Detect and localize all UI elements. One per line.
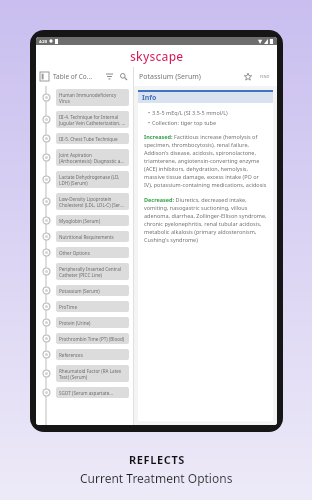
staticText: 4:20 (39, 39, 47, 44)
button[interactable]: Myoglobin (Serum) (36, 212, 133, 228)
staticText: Increased: Factitious increase (hemolysi… (144, 133, 267, 189)
staticText: III-4. Technique for Internal Jugular Ve… (59, 114, 126, 126)
button[interactable]: Peripherally Inserted Central Catheter (… (36, 260, 133, 282)
button[interactable]: Filter (104, 71, 115, 82)
staticText: Potassium (Serum) (59, 288, 100, 294)
staticText: 3.5-5 mEq/L (SI 3.5-5 mmol/L) (152, 109, 228, 116)
staticText: Lactate Dehydrogenase (LD, LDH) (Serum) (59, 174, 120, 186)
staticText: Info (142, 93, 157, 103)
button[interactable]: Other Options (36, 244, 133, 260)
button[interactable]: Human Immunodeficiency Virus (HIV) Testi… (36, 86, 133, 108)
button[interactable]: Favorite (242, 71, 254, 83)
button[interactable]: ProTime (36, 298, 133, 314)
other: Table of contents (40, 72, 49, 81)
staticText: Peripherally Inserted Central Catheter (… (59, 266, 121, 278)
button[interactable]: III-4. Technique for Internal Jugular Ve… (36, 108, 133, 130)
staticText: III-5. Chest Tube Technique (59, 136, 118, 142)
button[interactable]: Rheumatoid Factor (RA Latex Test) (Serum… (36, 362, 133, 384)
staticText: Other Options (59, 250, 90, 256)
staticText: Prothrombin Time (PT) (Blood) (59, 336, 125, 342)
button[interactable]: Lactate Dehydrogenase (LD, LDH) (Serum) (36, 168, 133, 190)
staticText: Nutritional Requirements (59, 234, 114, 240)
staticText: • (148, 119, 152, 126)
button[interactable]: Protein (Urine) (36, 314, 133, 330)
staticText: skyscape (130, 48, 184, 64)
button[interactable]: Prothrombin Time (PT) (Blood) (36, 330, 133, 346)
staticText: SGOT (Serum aspartate... (59, 390, 114, 396)
button[interactable]: References (36, 346, 133, 362)
staticText: • (148, 109, 152, 116)
button[interactable]: SGOT (Serum aspartate... (36, 384, 133, 400)
staticText: Decreased: Diuretics, decreased intake, … (144, 196, 267, 244)
staticText: Rheumatoid Factor (RA Latex Test) (Serum… (59, 368, 122, 380)
button[interactable]: Table of contents (36, 67, 133, 86)
button[interactable]: Search (118, 71, 129, 82)
staticText: Human Immunodeficiency Virus (HIV) Testi… (59, 92, 126, 104)
button[interactable]: FIND (258, 72, 272, 81)
staticText: Protein (Urine) (59, 320, 91, 326)
staticText: Table of Co... (53, 72, 92, 81)
button[interactable]: Joint Aspiration (Arthocentesis): Diagno… (36, 146, 133, 168)
staticText: Joint Aspiration (Arthocentesis): Diagno… (59, 152, 126, 164)
staticText: ProTime (59, 304, 77, 310)
staticText: Collection: tiger top tube (152, 119, 217, 126)
button[interactable]: Nutritional Requirements (36, 228, 133, 244)
staticText: Current Treatment Options (80, 470, 233, 486)
button[interactable]: Potassium (Serum) (36, 282, 133, 298)
staticText: Potassium (Serum) (139, 72, 201, 82)
button[interactable]: III-5. Chest Tube Technique (36, 130, 133, 146)
button[interactable]: Low-Density Lipoprotein Cholesterol (LDL… (36, 190, 133, 212)
staticText: REFLECTS (129, 452, 185, 467)
staticText: References (59, 352, 83, 358)
staticText: Myoglobin (Serum) (59, 218, 101, 224)
staticText: Low-Density Lipoprotein Cholesterol (LDL… (59, 196, 126, 208)
staticText: FIND (260, 74, 270, 79)
